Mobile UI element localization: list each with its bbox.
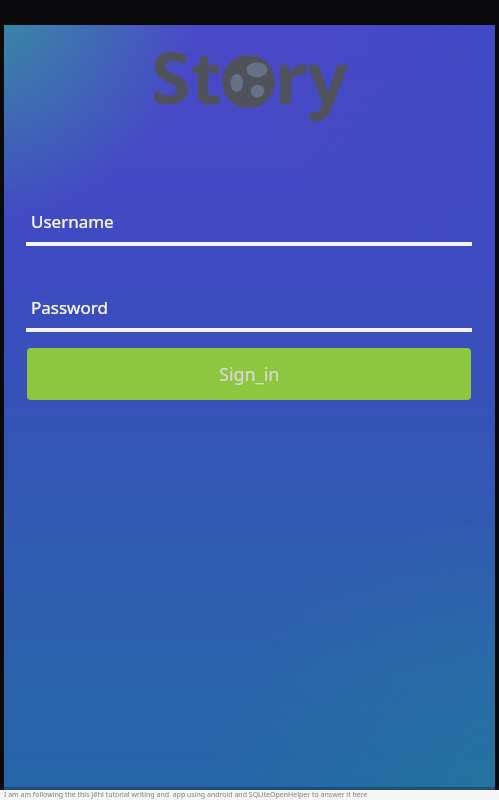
staticText: Password — [31, 296, 108, 319]
staticText: St — [151, 27, 222, 125]
staticText: ry — [275, 27, 349, 125]
button[interactable]: Sign_in — [27, 348, 471, 400]
staticText: Sign_in — [219, 362, 280, 387]
staticText: I am am following the this j#hl tutorial… — [4, 790, 368, 800]
staticText: Username — [31, 210, 114, 233]
